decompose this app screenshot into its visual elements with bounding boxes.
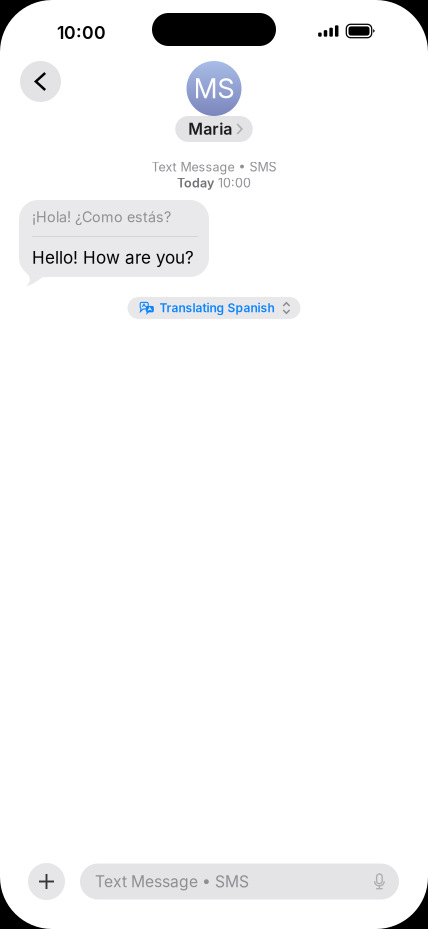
button[interactable]: Text Message • SMS [80, 863, 399, 899]
staticText: ¡Hola! ¿Como estás? [32, 208, 171, 226]
button[interactable]: MS [175, 57, 253, 142]
button[interactable]: Add attachment [28, 863, 65, 900]
button[interactable]: Translating Spanish [127, 297, 300, 319]
staticText: Hello! How are you? [32, 247, 194, 268]
staticText: 10:00 [57, 22, 106, 43]
staticText: Maria [188, 119, 232, 139]
staticText: 10:00 [218, 175, 251, 190]
staticText: Text Message • SMS [151, 159, 276, 174]
staticText: Text Message • SMS [95, 872, 249, 891]
staticText: Translating Spanish [159, 301, 274, 315]
button[interactable]: Back [20, 61, 61, 102]
staticText: Today [177, 175, 214, 190]
staticText: MS [193, 72, 234, 105]
